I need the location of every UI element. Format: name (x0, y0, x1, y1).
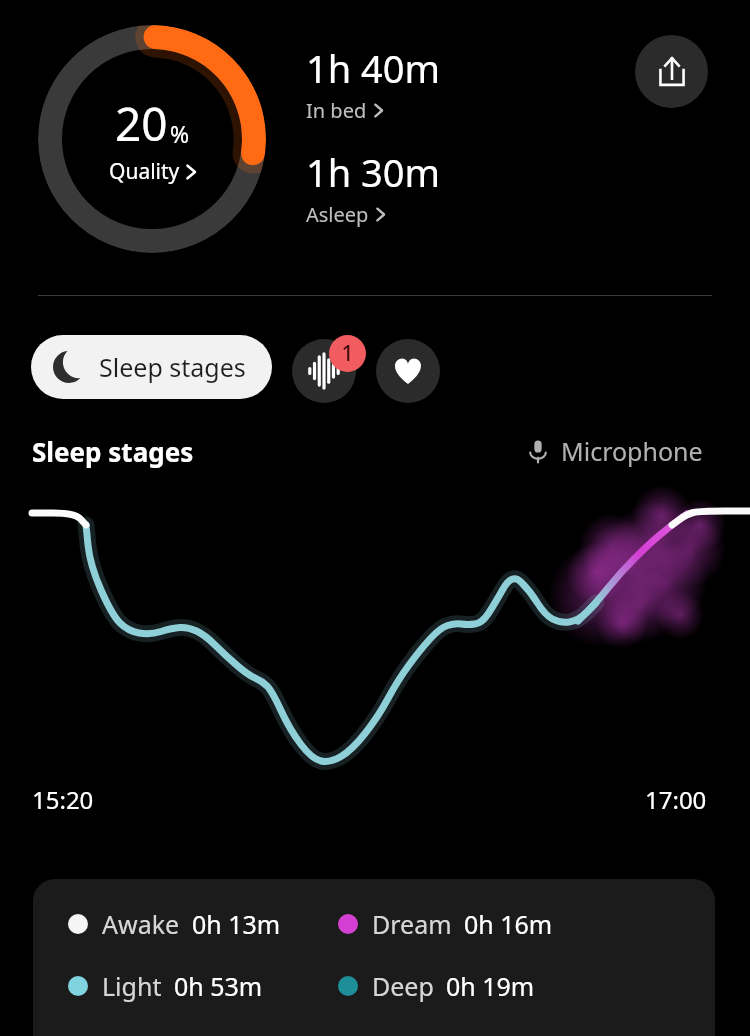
button[interactable]: Awake (33, 879, 715, 1036)
staticText: Dream (372, 907, 452, 941)
staticText: 20 (115, 92, 168, 155)
staticText: 0h 16m (464, 907, 553, 941)
button[interactable]: Heart rate (376, 339, 440, 403)
button[interactable]: Microphone (525, 434, 703, 468)
button[interactable]: Sleep audio recordings (292, 339, 356, 403)
staticText: 15:20 (32, 783, 94, 816)
button[interactable]: Deep (338, 969, 608, 1003)
button[interactable]: 1h 40m (306, 42, 441, 124)
staticText: Sleep stages (32, 434, 194, 469)
button[interactable] (0, 495, 750, 785)
staticText: 1h 40m (306, 42, 441, 94)
button[interactable]: 20 (38, 25, 266, 253)
staticText: Deep (372, 969, 434, 1003)
staticText: 17:00 (645, 783, 707, 816)
staticText: Quality (109, 157, 180, 186)
staticText: 1 (341, 339, 354, 368)
staticText: Asleep (306, 201, 369, 228)
staticText: 0h 19m (446, 969, 535, 1003)
button[interactable]: Awake (68, 907, 338, 941)
staticText: Awake (102, 907, 180, 941)
staticText: In bed (306, 97, 367, 124)
staticText: 1h 30m (306, 146, 441, 198)
button[interactable]: Share (635, 35, 708, 108)
staticText: 0h 13m (192, 907, 281, 941)
staticText: Light (102, 969, 162, 1003)
button[interactable]: Light (68, 969, 338, 1003)
staticText: % (170, 118, 190, 149)
button[interactable]: Dream (338, 907, 608, 941)
button[interactable]: Sleep stages (31, 335, 272, 399)
staticText: Sleep stages (99, 350, 246, 384)
button[interactable]: 1h 30m (306, 146, 441, 228)
staticText: 0h 53m (174, 969, 263, 1003)
staticText: Microphone (561, 434, 703, 468)
